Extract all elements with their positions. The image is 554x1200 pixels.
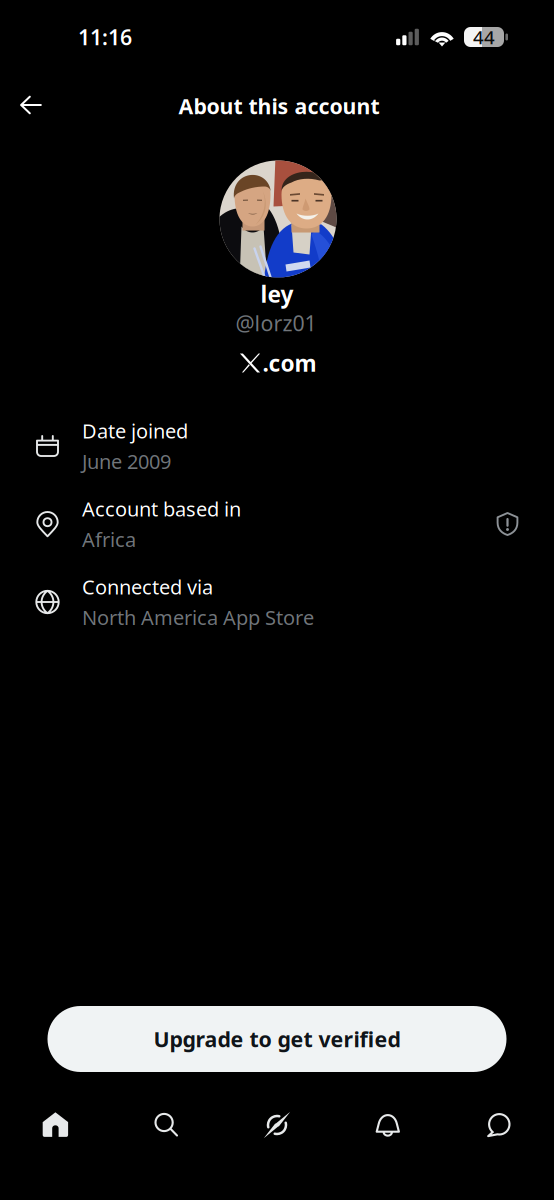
- button[interactable]: Notifications: [332, 1090, 443, 1160]
- staticText: 11:16: [78, 23, 132, 51]
- button[interactable]: Search: [111, 1090, 222, 1160]
- staticText: June 2009: [82, 448, 171, 475]
- staticText: ley: [260, 279, 293, 309]
- staticText: Africa: [82, 526, 136, 553]
- button[interactable]: Messages: [443, 1090, 554, 1160]
- staticText: 44: [473, 25, 495, 49]
- button[interactable]: Home: [0, 1090, 111, 1160]
- staticText: About this account: [178, 92, 379, 120]
- staticText: Upgrade to get verified: [153, 1025, 400, 1053]
- staticText: North America App Store: [82, 604, 314, 631]
- staticText: Date joined: [82, 417, 188, 444]
- button[interactable]: Upgrade to get verified: [47, 1006, 506, 1072]
- button[interactable]: Back: [5, 80, 57, 130]
- button[interactable]: Grok: [222, 1090, 332, 1160]
- staticText: Account based in: [82, 495, 241, 522]
- staticText: @lorz01: [235, 309, 316, 337]
- staticText: Connected via: [82, 573, 213, 600]
- staticText: .com: [262, 348, 316, 378]
